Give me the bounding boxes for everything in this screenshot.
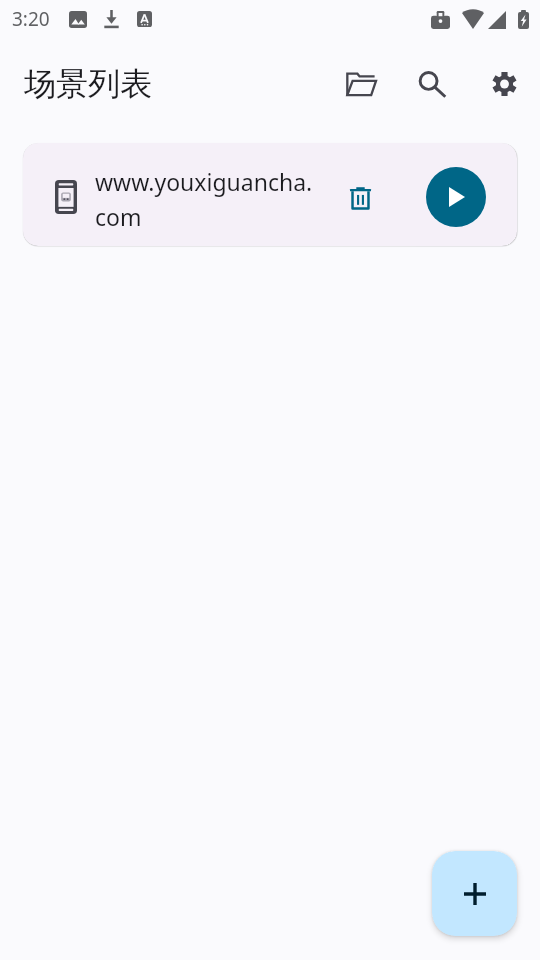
button[interactable]: Delete: [338, 176, 382, 220]
staticText: 3:20: [12, 6, 50, 32]
button[interactable]: Add: [432, 851, 517, 936]
staticText: www.youxiguancha.com: [95, 166, 315, 233]
button[interactable]: Settings: [480, 60, 528, 108]
button[interactable]: Open folder: [336, 60, 384, 108]
button[interactable]: Search: [407, 60, 455, 108]
button[interactable]: Play: [426, 167, 486, 227]
staticText: 场景列表: [24, 64, 152, 104]
button[interactable]: www.youxiguancha.com: [23, 143, 517, 246]
